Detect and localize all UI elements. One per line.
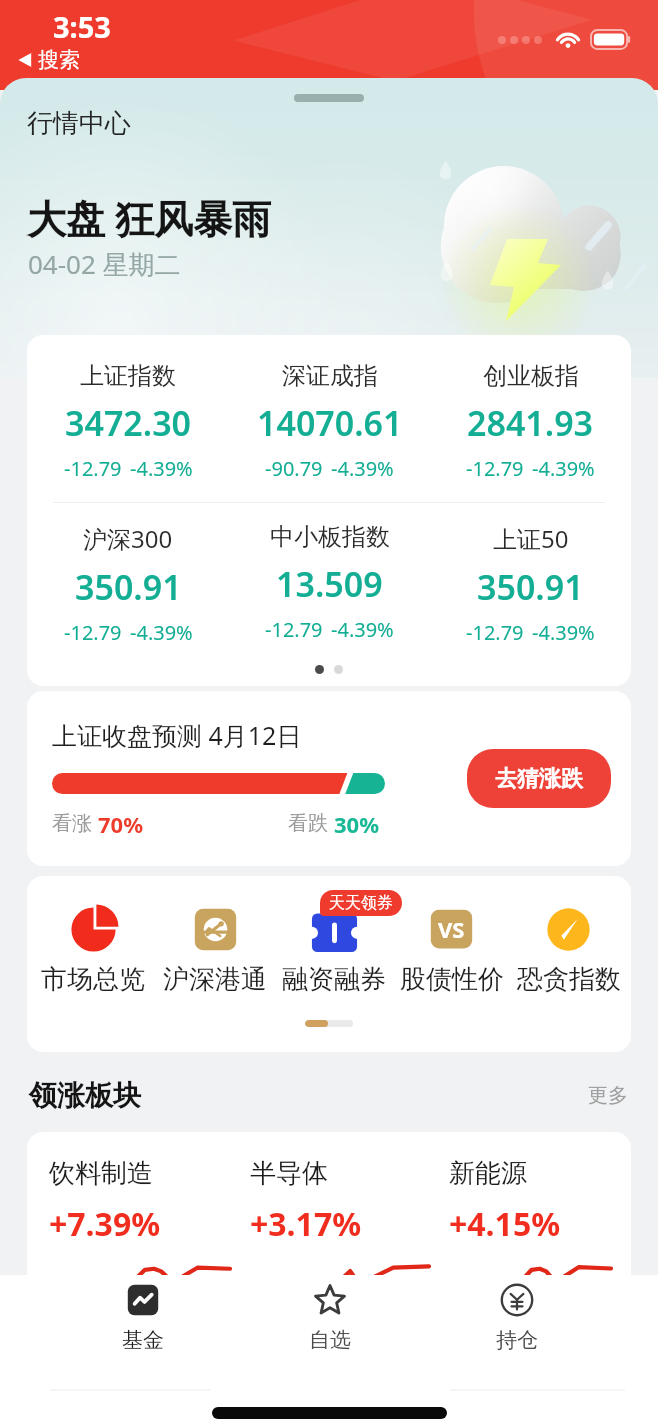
staticText: 3472.30 [65, 400, 192, 446]
button[interactable]: 持仓 [423, 1281, 610, 1353]
staticText: -12.79 [64, 455, 122, 482]
staticText: 350.91 [75, 564, 182, 610]
staticText: 上证50 [493, 522, 569, 555]
staticText: 3:53 [53, 7, 111, 46]
button[interactable]: 恐贪指数 [510, 906, 627, 996]
staticText: 持仓 [496, 1327, 538, 1353]
staticText: 看跌 [288, 809, 334, 836]
button[interactable]: VS [393, 906, 510, 996]
staticText: 70% [98, 809, 144, 839]
staticText: 上证指数 [80, 361, 176, 391]
staticText: 上证收盘预测 4月12日 [52, 718, 302, 752]
staticText: 恐贪指数 [517, 963, 621, 996]
staticText: -12.79 [466, 619, 524, 646]
staticText: 股债性价 [400, 963, 504, 996]
staticText: 04-02 星期二 [28, 246, 181, 282]
button[interactable]: 新能源 [449, 1157, 629, 1288]
button[interactable]: 去猜涨跌 [467, 749, 611, 808]
staticText: -4.39% [130, 455, 193, 482]
button[interactable]: 基金 [49, 1281, 236, 1353]
button[interactable]: 市场总览 [31, 906, 155, 996]
staticText: VS [438, 914, 465, 944]
staticText: 14070.61 [257, 400, 403, 446]
button[interactable]: 更多 [584, 1079, 632, 1112]
button[interactable]: 上证指数 [27, 361, 229, 482]
staticText: -12.79 [466, 455, 524, 482]
staticText: -4.39% [331, 616, 394, 643]
staticText: +7.39% [49, 1202, 161, 1246]
staticText: 中小板指数 [270, 522, 390, 552]
staticText: 基金 [122, 1327, 164, 1353]
button[interactable]: 创业板指 [430, 361, 631, 482]
staticText: 行情中心 [27, 107, 131, 140]
staticText: 350.91 [477, 564, 584, 610]
staticText: -4.39% [532, 619, 595, 646]
staticText: -4.39% [532, 455, 595, 482]
staticText: 30% [334, 809, 380, 839]
staticText: 融资融券 [282, 963, 386, 996]
staticText: 大盘 狂风暴雨 [27, 191, 272, 244]
button[interactable]: 中小板指数 [229, 522, 430, 643]
staticText: 新能源 [449, 1157, 527, 1190]
button[interactable]: 深证成指 [229, 361, 430, 482]
staticText: 13.509 [276, 561, 383, 607]
staticText: 看涨 [52, 809, 98, 836]
staticText: +3.17% [250, 1202, 362, 1246]
staticText: 深证成指 [282, 361, 378, 391]
staticText: 去猜涨跌 [495, 765, 583, 793]
staticText: 搜索 [38, 47, 80, 73]
staticText: 沪深300 [83, 522, 173, 555]
staticText: -12.79 [64, 619, 122, 646]
staticText: +4.15% [449, 1202, 561, 1246]
staticText: -4.39% [331, 455, 394, 482]
staticText: 自选 [309, 1327, 351, 1353]
staticText: 饮料制造 [49, 1157, 153, 1190]
staticText: -12.79 [265, 616, 323, 643]
staticText: -90.79 [265, 455, 323, 482]
button[interactable]: 沪深港通 [155, 906, 275, 996]
staticText: 半导体 [250, 1157, 328, 1190]
staticText: 2841.93 [467, 400, 594, 446]
staticText: 领涨板块 [29, 1078, 584, 1113]
staticText: 天天领券 [329, 893, 393, 913]
staticText: 更多 [588, 1083, 628, 1108]
button[interactable]: 天天领券 [275, 906, 393, 996]
button[interactable]: 半导体 [250, 1157, 449, 1288]
staticText: 创业板指 [483, 361, 579, 391]
staticText: 沪深港通 [163, 963, 267, 996]
button[interactable]: 饮料制造 [49, 1157, 250, 1288]
button[interactable]: 沪深300 [27, 522, 229, 646]
staticText: -4.39% [130, 619, 193, 646]
staticText: 市场总览 [41, 963, 145, 996]
button[interactable]: 自选 [236, 1281, 423, 1353]
button[interactable]: 上证50 [430, 522, 631, 646]
